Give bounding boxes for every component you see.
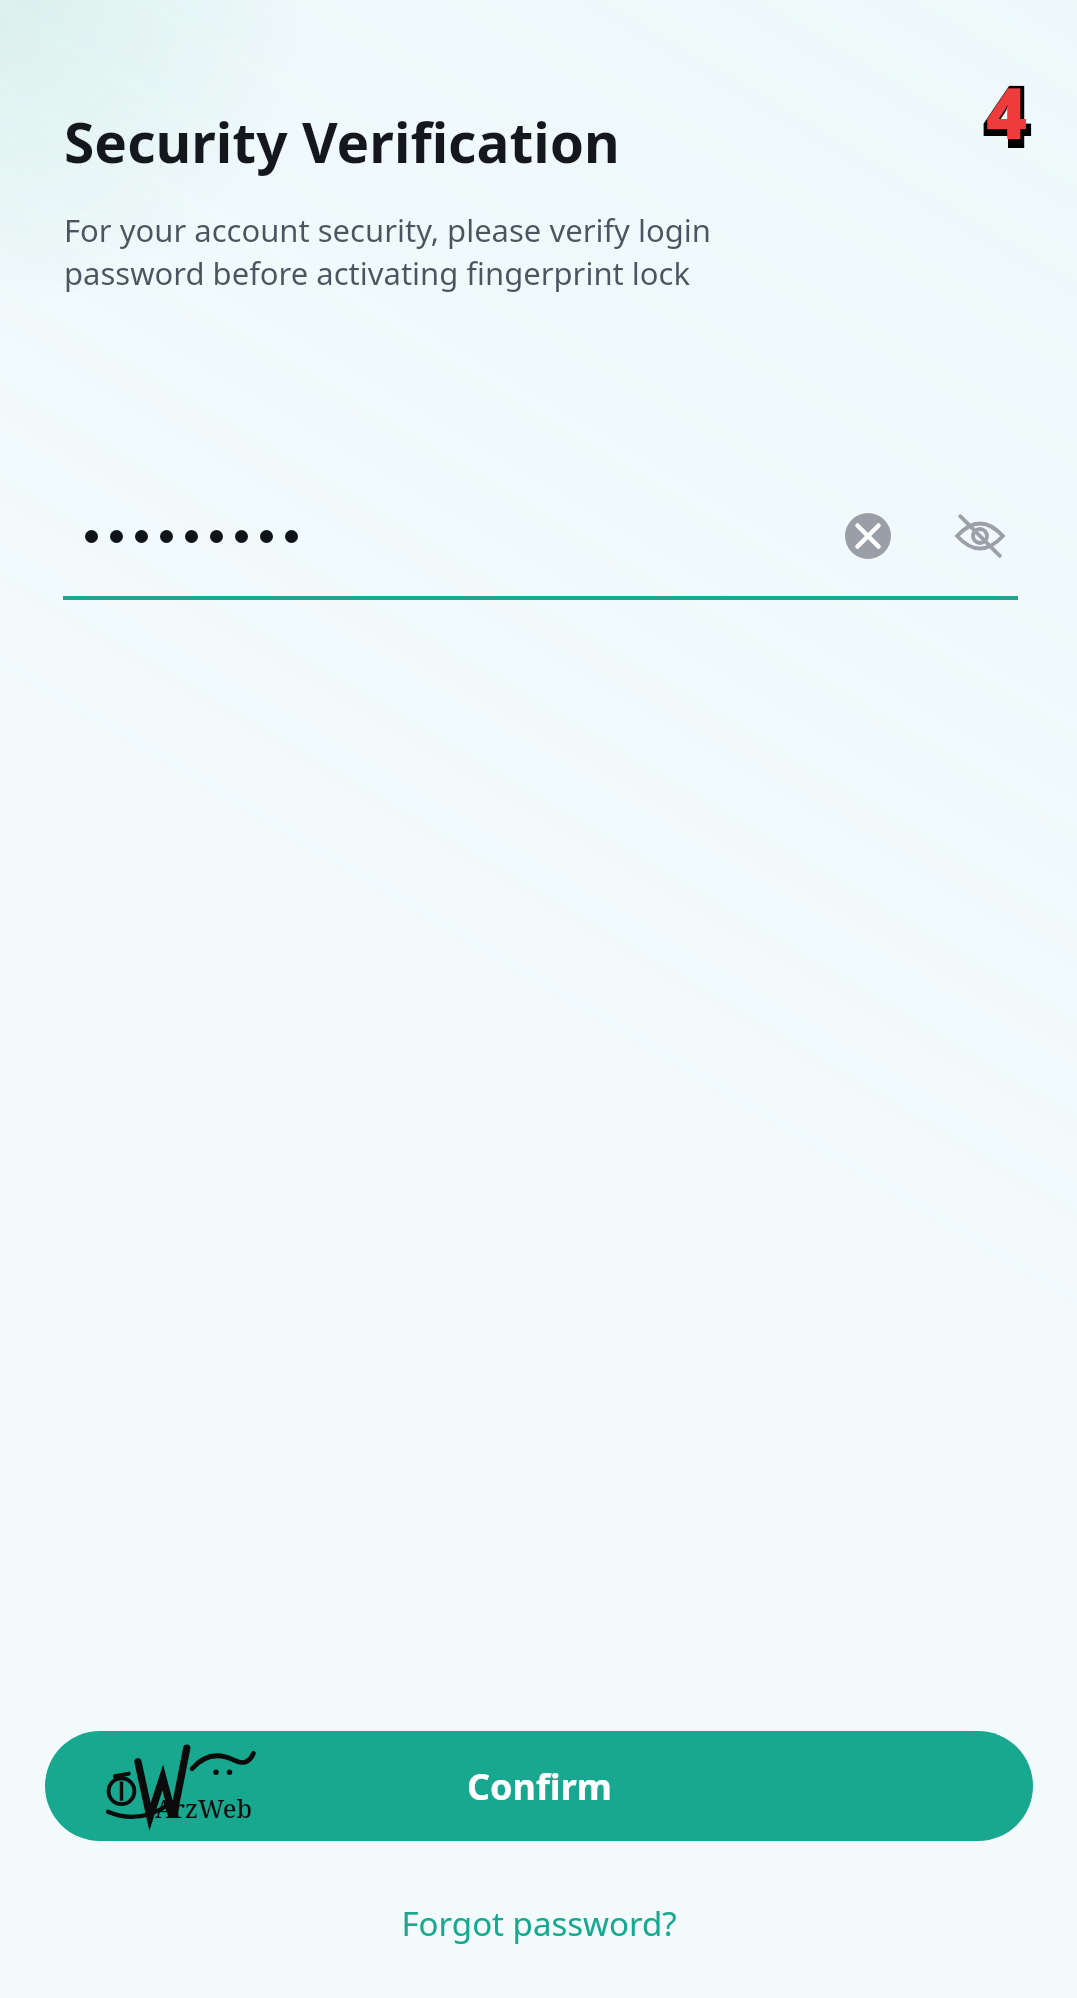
button[interactable]: Confirm [45,1731,1033,1841]
staticText: ArzWeb [155,1791,253,1825]
staticText: For your account security, please verify… [64,209,774,294]
staticText: Confirm [467,1762,612,1811]
button[interactable]: Show password [942,498,1018,574]
staticText: Security Verification [64,104,620,179]
button[interactable]: Clear password [830,498,906,574]
button[interactable]: Forgot password? [377,1893,701,1954]
staticText: 4 [982,56,1033,166]
staticText: 4 [986,64,1028,159]
staticText: Forgot password? [401,1901,677,1946]
